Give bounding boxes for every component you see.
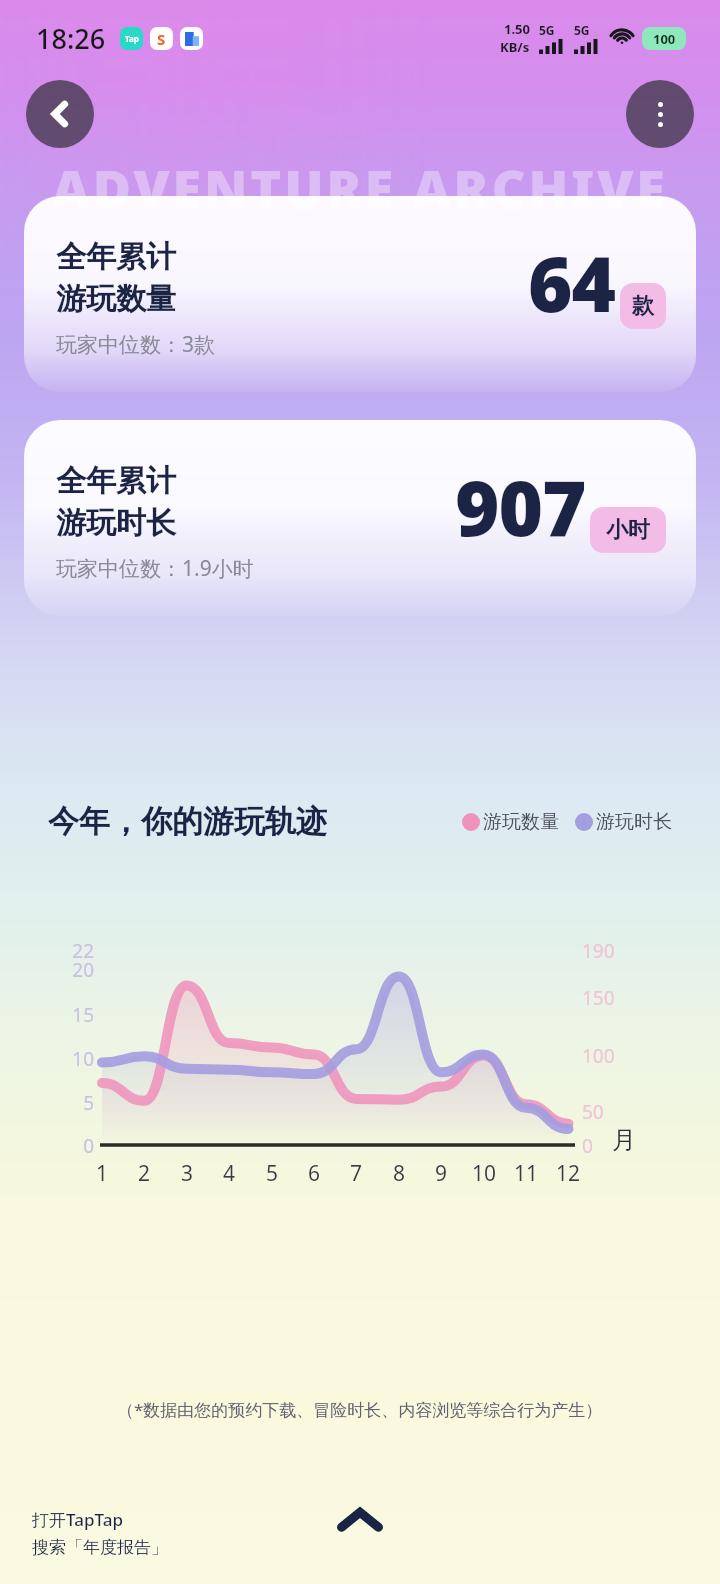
staticText: 0 — [60, 1133, 94, 1159]
staticText: 9 — [427, 1159, 455, 1188]
staticText: 2 — [130, 1159, 158, 1188]
staticText: 11 — [512, 1159, 540, 1188]
staticText: 190 — [582, 938, 615, 964]
staticText: 64 — [528, 231, 616, 335]
button[interactable]: 全年累计 — [24, 420, 696, 616]
staticText: 18:26 — [36, 20, 106, 57]
staticText: 玩家中位数：3款 — [56, 330, 216, 359]
staticText: 搜索「年度报告」 — [32, 1537, 168, 1558]
staticText: 5G — [539, 22, 555, 38]
staticText: 游玩数量 — [483, 810, 559, 834]
staticText: 100 — [582, 1043, 615, 1069]
staticText: 今年，你的游玩轨迹 — [48, 802, 327, 841]
staticText: 5G — [574, 22, 590, 38]
staticText: 15 — [60, 1002, 94, 1028]
button[interactable]: 全年累计 — [24, 196, 696, 392]
staticText: 5 — [258, 1159, 286, 1188]
staticText: 4 — [215, 1159, 243, 1188]
staticText: 150 — [582, 985, 615, 1011]
staticText: 打开TapTap — [32, 1508, 123, 1531]
button[interactable]: Scroll up — [328, 1490, 392, 1554]
staticText: 20 — [60, 957, 94, 983]
staticText: 全年累计 — [56, 462, 176, 500]
staticText: 7 — [342, 1159, 370, 1188]
staticText: 1 — [88, 1159, 116, 1188]
staticText: 全年累计 — [56, 238, 176, 276]
staticText: 100 — [653, 30, 676, 48]
staticText: 3 — [173, 1159, 201, 1188]
staticText: 22 — [60, 938, 94, 964]
staticText: ADVENTURE ARCHIVE — [52, 152, 668, 223]
staticText: 月 — [612, 1125, 636, 1155]
staticText: S — [157, 29, 166, 49]
staticText: 款 — [632, 292, 654, 320]
staticText: 5 — [60, 1090, 94, 1116]
staticText: 游玩时长 — [596, 810, 672, 834]
staticText: 10 — [470, 1159, 498, 1188]
staticText: Tap — [125, 33, 139, 44]
button[interactable]: More options — [626, 80, 694, 148]
staticText: 1.50 — [504, 20, 530, 38]
staticText: 10 — [60, 1046, 94, 1072]
staticText: 游玩数量 — [56, 280, 176, 318]
staticText: 游玩时长 — [56, 504, 176, 542]
staticText: 玩家中位数：1.9小时 — [56, 554, 254, 583]
staticText: 8 — [385, 1159, 413, 1188]
staticText: （*数据由您的预约下载、冒险时长、内容浏览等综合行为产生） — [117, 1398, 603, 1421]
staticText: 小时 — [606, 516, 650, 544]
staticText: KB/s — [500, 38, 530, 56]
staticText: 50 — [582, 1099, 604, 1125]
button[interactable]: Back — [26, 80, 94, 148]
staticText: 12 — [554, 1159, 582, 1188]
staticText: 6 — [300, 1159, 328, 1188]
staticText: 0 — [582, 1133, 593, 1159]
staticText: 907 — [455, 455, 586, 559]
